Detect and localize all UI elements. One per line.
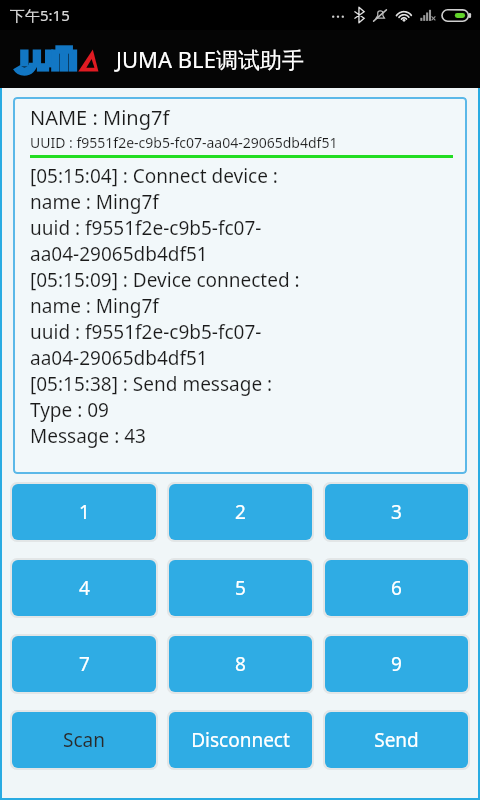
button[interactable]: 1 [12,484,156,540]
staticText: Send [374,727,419,753]
staticText: [05:15:38] : Send message : [30,371,273,397]
staticText: 1 [79,499,90,525]
staticText: 9 [391,651,402,677]
button[interactable]: 7 [12,636,156,692]
button[interactable]: 3 [325,484,468,540]
button[interactable]: Disconnect [169,712,312,768]
staticText: Disconnect [191,727,290,753]
button[interactable]: 6 [325,560,468,616]
staticText: [05:15:04] : Connect device : [30,163,278,189]
staticText: Type : 09 [30,397,109,423]
staticText: 7 [79,651,90,677]
staticText: 2 [235,499,246,525]
staticText: 6 [391,575,402,601]
button[interactable]: Send [325,712,468,768]
staticText: UUID : f9551f2e-c9b5-fc07-aa04-29065db4d… [30,133,338,152]
staticText: NAME : Ming7f [30,104,170,131]
staticText: 下午5:15 [10,5,70,25]
button[interactable]: 8 [169,636,312,692]
button[interactable]: 2 [169,484,312,540]
button[interactable]: 4 [12,560,156,616]
staticText: JUMA BLE调试助手 [116,44,304,74]
staticText: 8 [235,651,246,677]
staticText: name : Ming7f [30,189,159,215]
staticText: Message : 43 [30,423,146,449]
staticText: uuid : f9551f2e-c9b5-fc07- [30,319,262,345]
staticText: [05:15:09] : Device connected : [30,267,300,293]
staticText: Scan [63,727,105,753]
button[interactable]: 5 [169,560,312,616]
staticText: uuid : f9551f2e-c9b5-fc07- [30,215,262,241]
button[interactable]: 9 [325,636,468,692]
staticText: 4 [79,575,90,601]
button[interactable]: Scan [12,712,156,768]
button[interactable]: NAME : Ming7f [13,97,467,474]
staticText: name : Ming7f [30,293,159,319]
staticText: aa04-29065db4df51 [30,241,208,267]
staticText: aa04-29065db4df51 [30,345,208,371]
staticText: 3 [391,499,402,525]
staticText: 5 [235,575,246,601]
